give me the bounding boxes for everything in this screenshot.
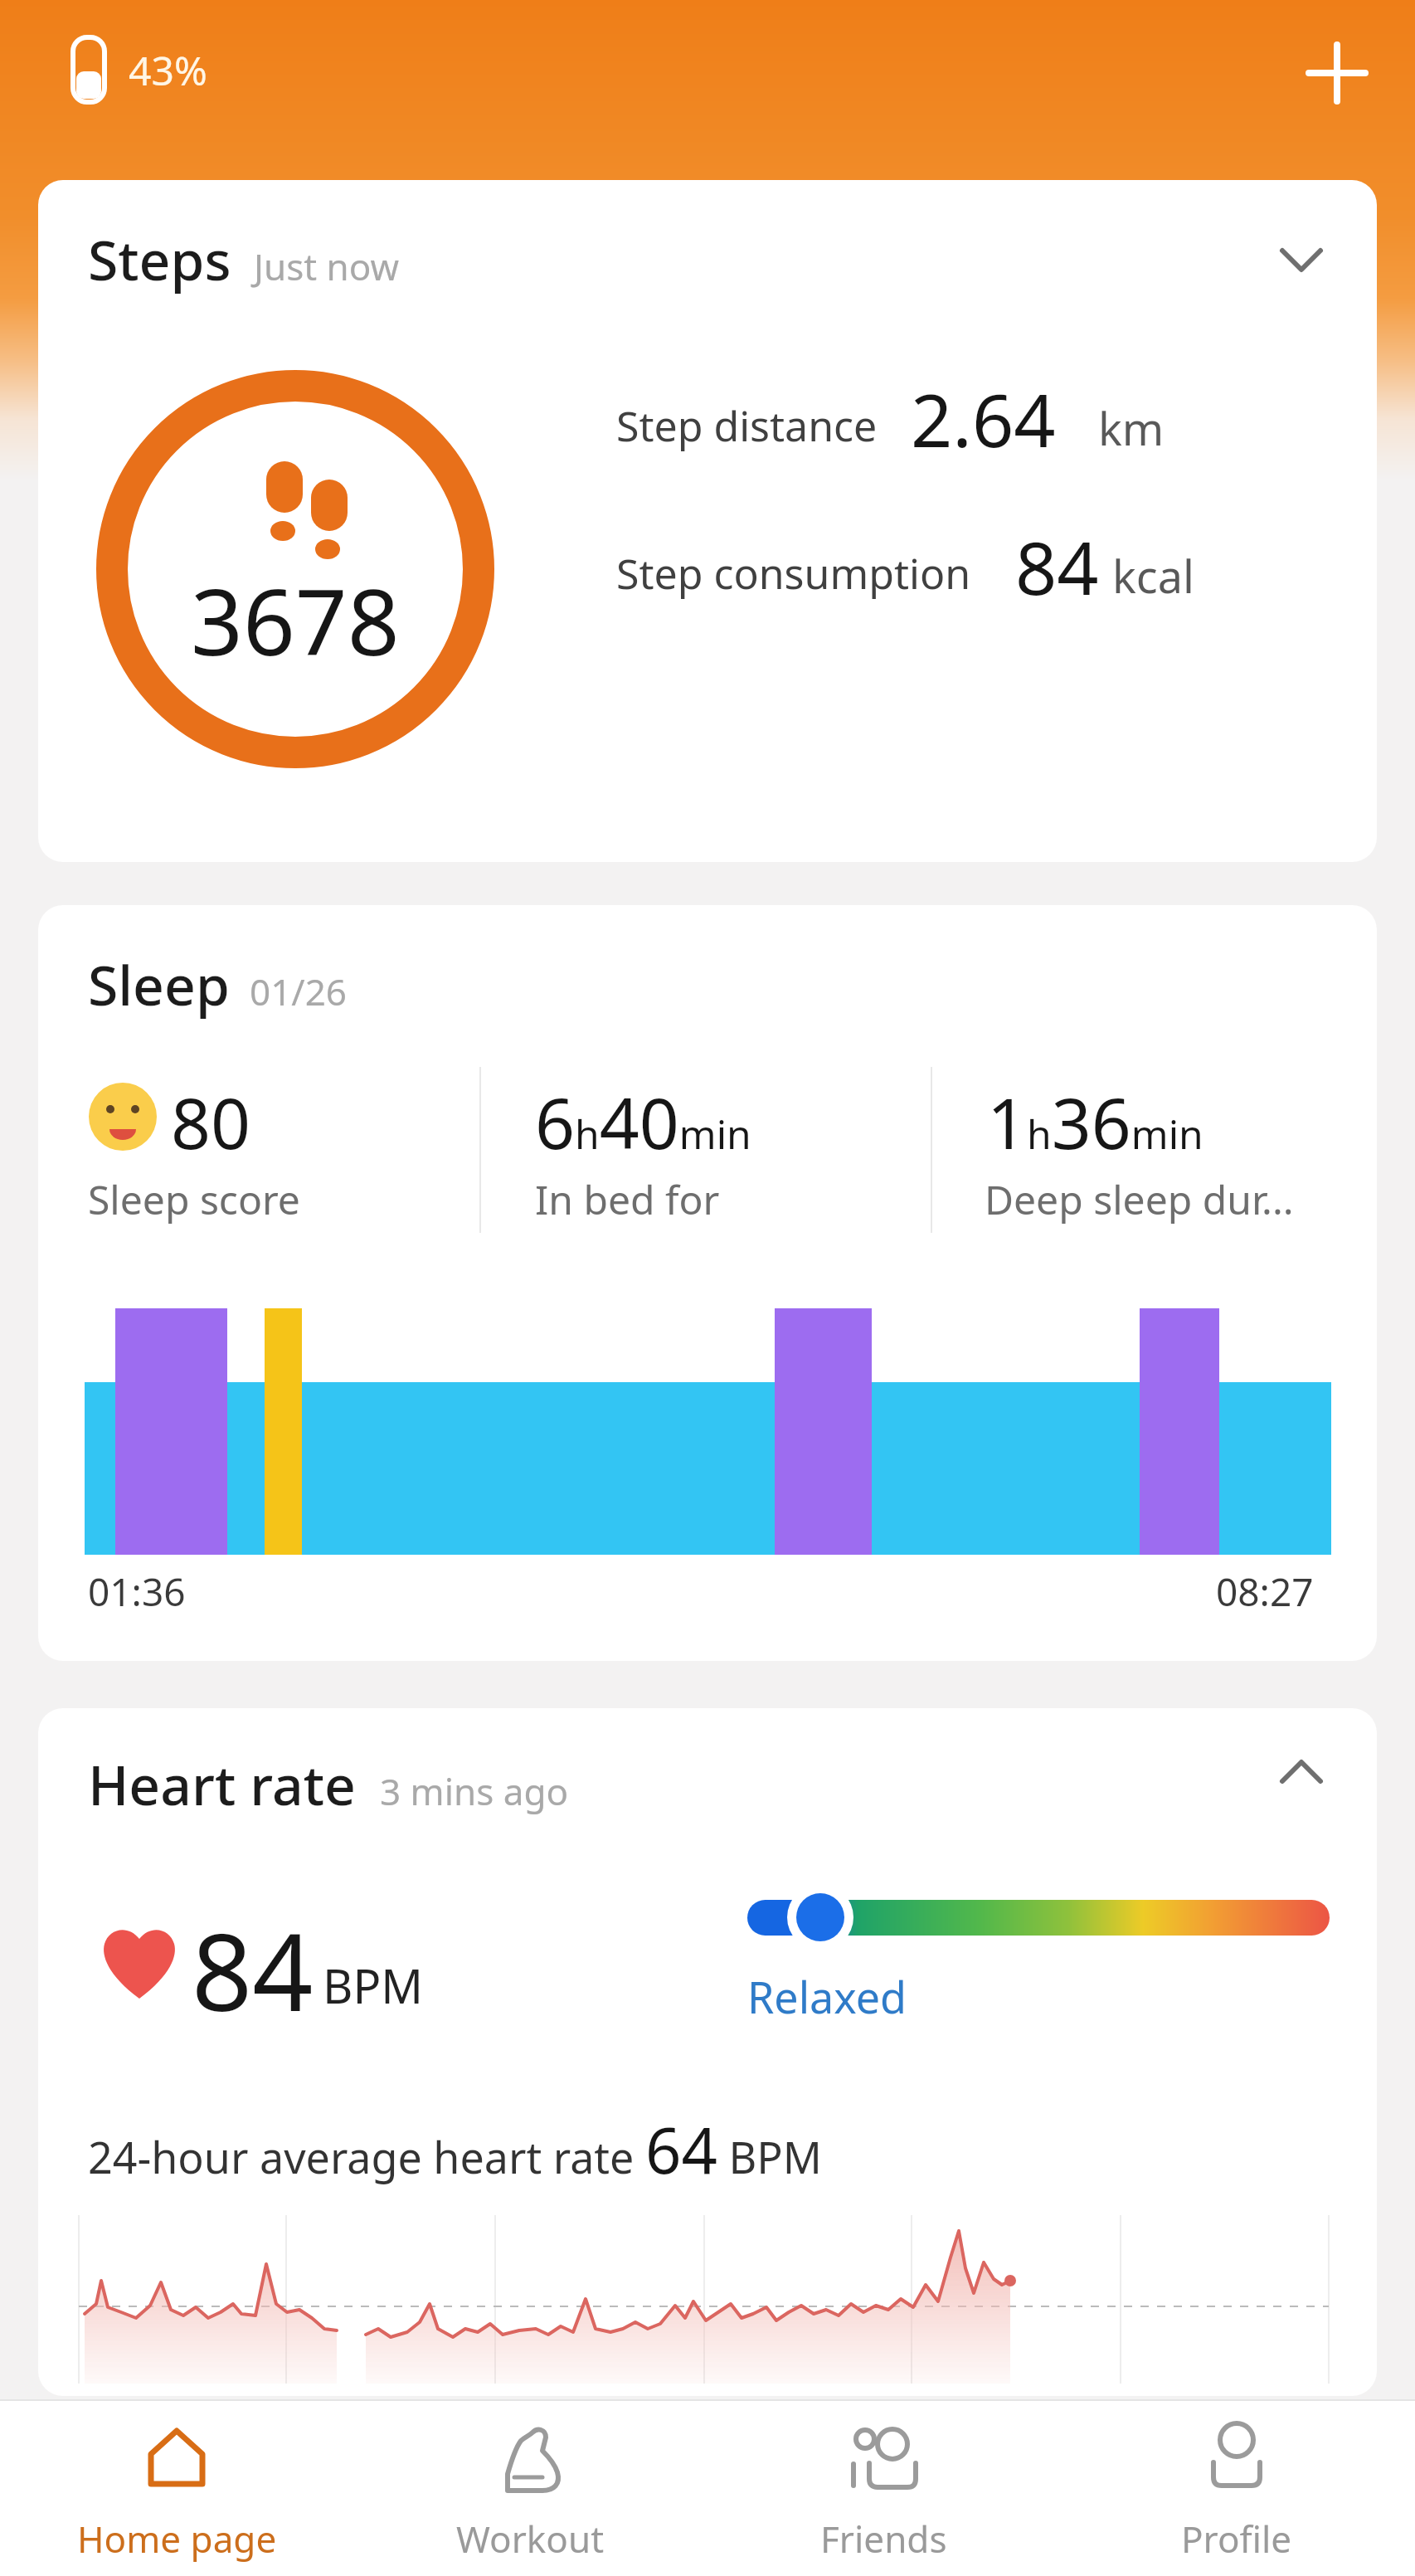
staticText: 1h36min (987, 1074, 1203, 1169)
staticText: 3 mins ago (380, 1766, 569, 1816)
button[interactable]: Friends (751, 2399, 1016, 2576)
staticText: Profile (1181, 2514, 1292, 2564)
staticText: Steps (88, 222, 231, 296)
staticText: Friends (820, 2514, 947, 2564)
staticText: Home page (77, 2514, 277, 2564)
staticText: 84 (192, 1897, 314, 2042)
staticText: Just now (254, 241, 400, 291)
staticText: 01:36 (88, 1566, 186, 1618)
button[interactable]: Profile (1104, 2399, 1369, 2576)
staticText: 24-hour average heart rate 64 BPM (88, 2106, 822, 2193)
button[interactable] (1294, 33, 1385, 124)
staticText: 84 (1015, 517, 1099, 616)
staticText: Heart rate (88, 1746, 356, 1821)
staticText: 2.64 (911, 369, 1056, 469)
button[interactable]: Home page (44, 2399, 309, 2576)
staticText: Step distance (616, 397, 878, 454)
staticText: 01/26 (250, 967, 348, 1016)
staticText: km (1098, 397, 1165, 459)
staticText: Deep sleep dur... (985, 1172, 1294, 1226)
button[interactable]: Heart rate (38, 1708, 1377, 2396)
staticText: 08:27 (1216, 1566, 1314, 1618)
staticText: kcal (1112, 545, 1194, 606)
button[interactable]: Workout (397, 2399, 663, 2576)
button[interactable]: Sleep (38, 905, 1377, 1661)
staticText: 43% (129, 43, 207, 97)
staticText: Workout (456, 2514, 605, 2564)
staticText: Relaxed (747, 1967, 907, 2026)
staticText: 80 (171, 1074, 251, 1169)
staticText: Step consumption (616, 545, 971, 601)
button[interactable]: Steps (38, 180, 1377, 862)
staticText: Sleep (88, 947, 230, 1021)
staticText: BPM (323, 1954, 424, 2017)
staticText: Sleep score (88, 1172, 300, 1226)
staticText: 3678 (191, 558, 400, 682)
staticText: In bed for (535, 1172, 720, 1226)
staticText: 6h40min (535, 1074, 751, 1169)
